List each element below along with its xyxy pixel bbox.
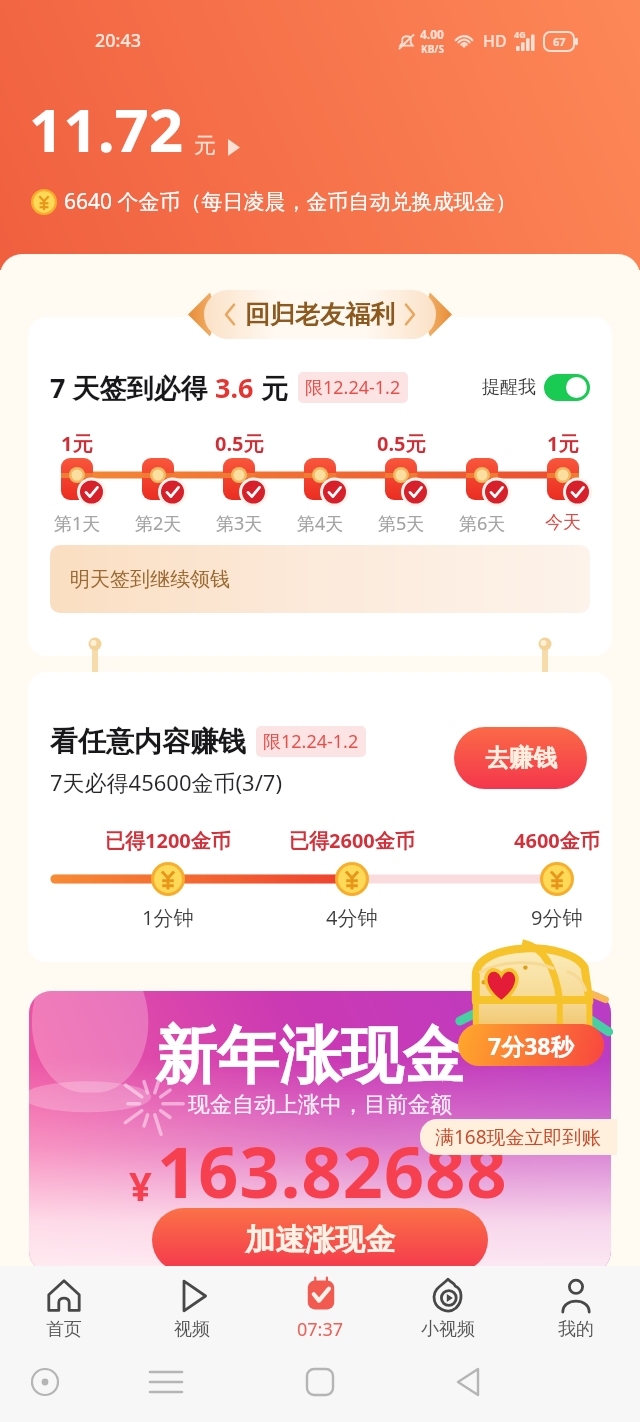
button[interactable]: 0.5元 [212,430,266,530]
button[interactable]: 11.72 [29,88,240,170]
staticText: 第6天 [459,511,506,536]
button[interactable]: 07:37 [256,1266,384,1350]
staticText: 第1天 [54,511,101,536]
staticText: 11.72 [29,88,184,170]
staticText: 限12.24-1.2 [263,729,359,754]
staticText: 第4天 [297,511,344,536]
staticText: 明天签到继续领钱 [70,567,230,592]
staticText: 小视频 [421,1318,475,1341]
button[interactable]: 去赚钱 [454,727,587,789]
staticText: 元 [194,132,216,160]
staticText: 7天必得45600金币(3/7) [50,767,283,797]
staticText: 4G [514,28,526,40]
staticText: 0.5元 [377,430,426,457]
staticText: 加速涨现金 [245,1221,395,1259]
button[interactable]: 加速涨现金 [152,1208,488,1272]
staticText: 第3天 [216,511,263,536]
button[interactable]: 首页 [0,1266,128,1350]
staticText: 新年涨现金 [155,1017,465,1095]
staticText: 已得1200金币 [105,827,231,854]
staticText: 元 [254,369,289,406]
button[interactable]: 第2天 [131,430,185,530]
staticText: 1元 [547,430,579,457]
staticText: 163.82688 [157,1123,508,1218]
staticText: 去赚钱 [485,743,557,773]
staticText: 首页 [46,1318,82,1341]
button[interactable]: 小视频 [384,1266,512,1350]
button[interactable]: 视频 [128,1266,256,1350]
staticText: 4.00 [420,26,444,42]
staticText: 1分钟 [142,904,194,931]
staticText: 第5天 [378,511,425,536]
staticText: 限12.24-1.2 [305,375,401,400]
staticText: 7 天签到必得 [50,369,215,406]
staticText: 今天 [545,511,581,534]
button[interactable]: 第6天 [455,430,509,530]
staticText: 提醒我 [482,376,536,399]
staticText: 1元 [61,430,93,457]
staticText: 7分38秒 [488,1030,574,1061]
staticText: 20:43 [95,28,142,53]
staticText: 6640 个金币（每日凌晨，金币自动兑换成现金） [64,187,517,216]
button[interactable]: 7分38秒 [458,1024,604,1066]
staticText: KB/S [421,42,444,56]
staticText: 已得2600金币 [289,827,415,854]
button[interactable]: 1元 [50,430,104,530]
staticText: 第2天 [135,511,182,536]
button[interactable]: 提醒我 [482,374,590,401]
staticText: 07:37 [297,1317,344,1342]
staticText: 看任意内容赚钱 [50,724,246,759]
staticText: ¥ [129,1158,152,1212]
button[interactable]: 我的 [512,1266,640,1350]
staticText: 9分钟 [531,904,583,931]
staticText: 现金自动上涨中，目前金额 [188,1091,452,1119]
staticText: 4600金币 [514,827,600,854]
button[interactable]: 第4天 [293,430,347,530]
staticText: 回归老友福利 [245,299,395,330]
staticText: 我的 [558,1318,594,1341]
staticText: 满168现金立即到账 [435,1124,601,1150]
staticText: 67 [553,34,566,49]
staticText: 0.5元 [215,430,264,457]
other: 提醒我开关 [544,374,590,401]
button[interactable]: 0.5元 [374,430,428,530]
staticText: 3.6 [215,369,254,406]
staticText: HD [483,30,507,52]
staticText: 4分钟 [326,904,378,931]
button[interactable]: 1元 [536,430,590,530]
button[interactable]: 明天签到继续领钱 [50,545,590,613]
staticText: 视频 [174,1318,210,1341]
